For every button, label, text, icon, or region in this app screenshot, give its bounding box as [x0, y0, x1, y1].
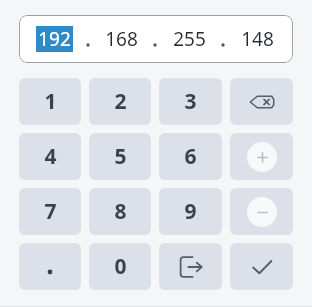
staticText: 4: [44, 142, 57, 171]
staticText: 9: [184, 197, 197, 226]
button[interactable]: Next field: [159, 243, 222, 290]
button[interactable]: 4: [19, 133, 81, 180]
button[interactable]: 5: [89, 133, 151, 180]
button[interactable]: 1: [19, 78, 81, 125]
staticText: 192: [38, 26, 71, 52]
button[interactable]: 192: [29, 26, 80, 52]
button[interactable]: 168: [96, 26, 147, 52]
button[interactable]: 148: [231, 26, 283, 52]
button[interactable]: 192: [19, 15, 293, 63]
staticText: 255: [173, 26, 206, 52]
staticText: 8: [114, 197, 127, 226]
button[interactable]: 255: [163, 26, 215, 52]
button[interactable]: Dot: [19, 243, 81, 290]
button[interactable]: 8: [89, 188, 151, 235]
button[interactable]: 6: [159, 133, 222, 180]
staticText: 6: [184, 142, 197, 171]
staticText: 148: [241, 26, 274, 52]
button[interactable]: 2: [89, 78, 151, 125]
staticText: 3: [184, 87, 197, 116]
staticText: 5: [114, 142, 127, 171]
staticText: 2: [114, 87, 127, 116]
button[interactable]: 9: [159, 188, 222, 235]
button[interactable]: 0: [89, 243, 151, 290]
staticText: 1: [44, 87, 57, 116]
button[interactable]: 3: [159, 78, 222, 125]
staticText: 7: [44, 197, 57, 226]
button[interactable]: Backspace: [230, 78, 293, 125]
button[interactable]: Increment: [230, 133, 293, 180]
button[interactable]: Decrement: [230, 188, 293, 235]
button[interactable]: 7: [19, 188, 81, 235]
staticText: 0: [114, 252, 127, 281]
staticText: 168: [105, 26, 138, 52]
button[interactable]: Confirm: [230, 243, 293, 290]
